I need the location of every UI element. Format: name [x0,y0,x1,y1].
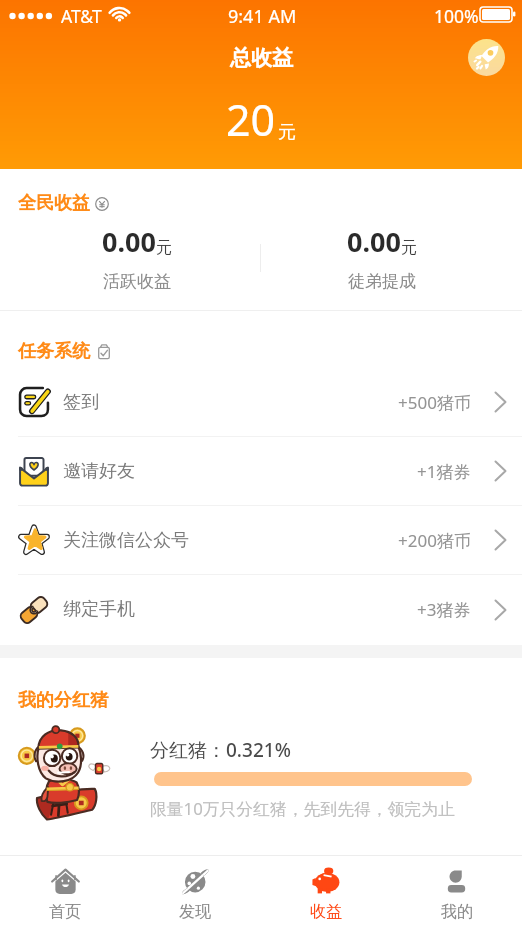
staticText: 邀请好友 [63,460,135,483]
staticText: 发现 [179,902,211,922]
staticText: 分红猪：0.321% [150,737,291,763]
staticText: 0.00 [102,223,156,260]
button[interactable]: 关注微信公众号 [0,506,522,574]
button[interactable]: 我的 [391,856,522,931]
staticText: 9:41 AM [228,4,297,29]
staticText: 我的 [441,902,473,922]
staticText: 元 [278,121,296,144]
staticText: 总收益 [230,45,293,71]
staticText: 首页 [49,902,81,922]
staticText: 我的分红猪 [18,689,108,712]
button[interactable]: 0.00 [261,223,502,292]
staticText: AT&T [61,4,102,28]
staticText: 元 [401,238,417,258]
staticText: 20 [226,90,276,149]
staticText: 任务系统 [18,340,90,363]
staticText: +500猪币 [398,391,471,414]
staticText: 元 [156,238,172,258]
staticText: 绑定手机 [63,598,135,621]
button[interactable]: 绑定手机 [0,575,522,644]
button[interactable]: 0.00 [14,223,260,292]
staticText: 活跃收益 [103,271,171,292]
staticText: 收益 [310,902,342,922]
staticText: 0.00 [347,223,401,260]
staticText: 徒弟提成 [348,271,416,292]
staticText: 签到 [63,391,99,414]
staticText: 限量10万只分红猪，先到先得，领完为止 [150,797,455,820]
button[interactable]: 发现 [130,856,260,931]
button[interactable]: 加速 [468,39,505,76]
staticText: 100% [434,4,479,28]
staticText: +3猪券 [417,598,471,621]
button[interactable]: 首页 [0,856,130,931]
staticText: 全民收益 [18,192,90,215]
button[interactable]: 签到 [0,368,522,436]
staticText: 关注微信公众号 [63,529,189,552]
staticText: +200猪币 [398,529,471,552]
staticText: +1猪券 [417,460,471,483]
button[interactable]: 收益 [260,856,391,931]
button[interactable]: 邀请好友 [0,437,522,505]
